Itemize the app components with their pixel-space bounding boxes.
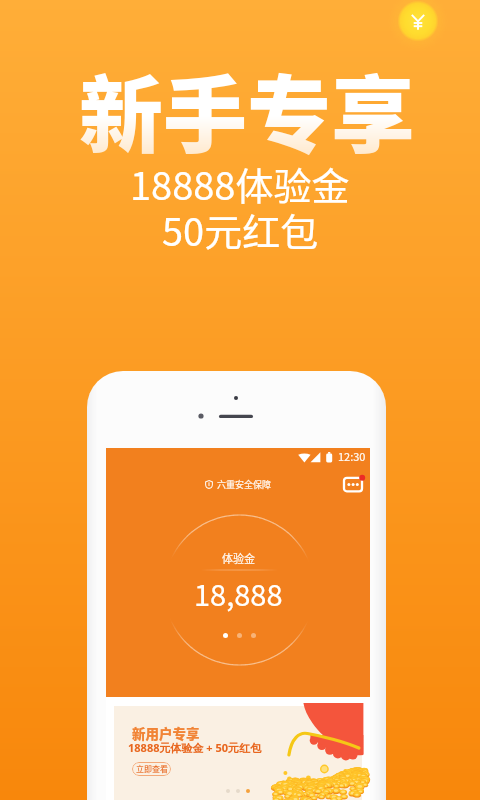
staticText: 新用户专享	[132, 723, 200, 743]
staticText: 18,888	[194, 572, 283, 614]
button[interactable]: Messages	[342, 475, 364, 493]
staticText: 18888体验金	[130, 156, 350, 211]
staticText: 50元红包	[162, 202, 319, 257]
button[interactable]: 立即查看	[132, 762, 171, 776]
staticText: 六重安全保障	[217, 478, 272, 491]
staticText: 体验金	[222, 550, 255, 566]
staticText: 12:30	[338, 448, 366, 464]
staticText: 18888元体验金 + 50元红包	[128, 740, 262, 755]
staticText: 立即查看	[136, 763, 168, 775]
staticText: 新手专享	[79, 49, 416, 171]
button[interactable]: 新用户专享	[114, 706, 362, 800]
